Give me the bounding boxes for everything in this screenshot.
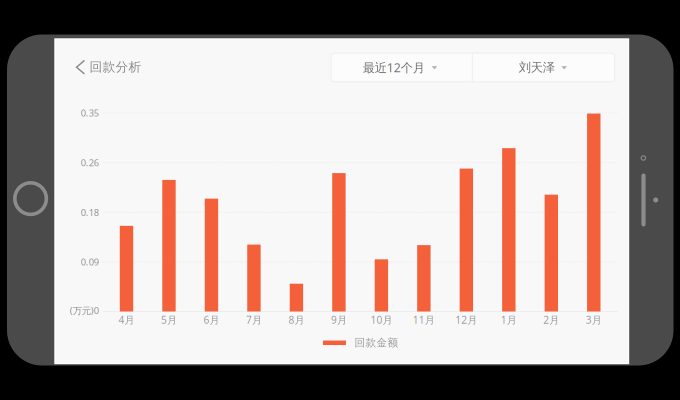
staticText: 回款金额: [354, 336, 398, 349]
button[interactable]: 回款分析: [56, 50, 142, 84]
staticText: 1月: [501, 313, 517, 327]
staticText: 9月: [331, 313, 347, 327]
button[interactable]: 最近12个月: [331, 53, 472, 82]
staticText: 10月: [370, 313, 392, 327]
staticText: 5月: [161, 313, 177, 327]
staticText: 4月: [118, 313, 134, 327]
staticText: 0.35: [81, 107, 99, 119]
staticText: 2月: [543, 313, 559, 327]
staticText: 0.26: [81, 156, 99, 169]
staticText: 刘天泽: [519, 60, 555, 75]
staticText: (万元)0: [70, 304, 99, 317]
staticText: 7月: [246, 313, 262, 327]
button[interactable]: 刘天泽: [472, 53, 615, 82]
staticText: 最近12个月: [363, 59, 425, 76]
staticText: 0.18: [81, 206, 99, 219]
staticText: 8月: [288, 313, 304, 327]
staticText: 6月: [203, 313, 219, 327]
staticText: 0.09: [81, 256, 99, 268]
staticText: 11月: [413, 313, 435, 327]
staticText: 3月: [586, 313, 602, 327]
staticText: 12月: [455, 313, 477, 327]
staticText: 回款分析: [89, 59, 141, 75]
